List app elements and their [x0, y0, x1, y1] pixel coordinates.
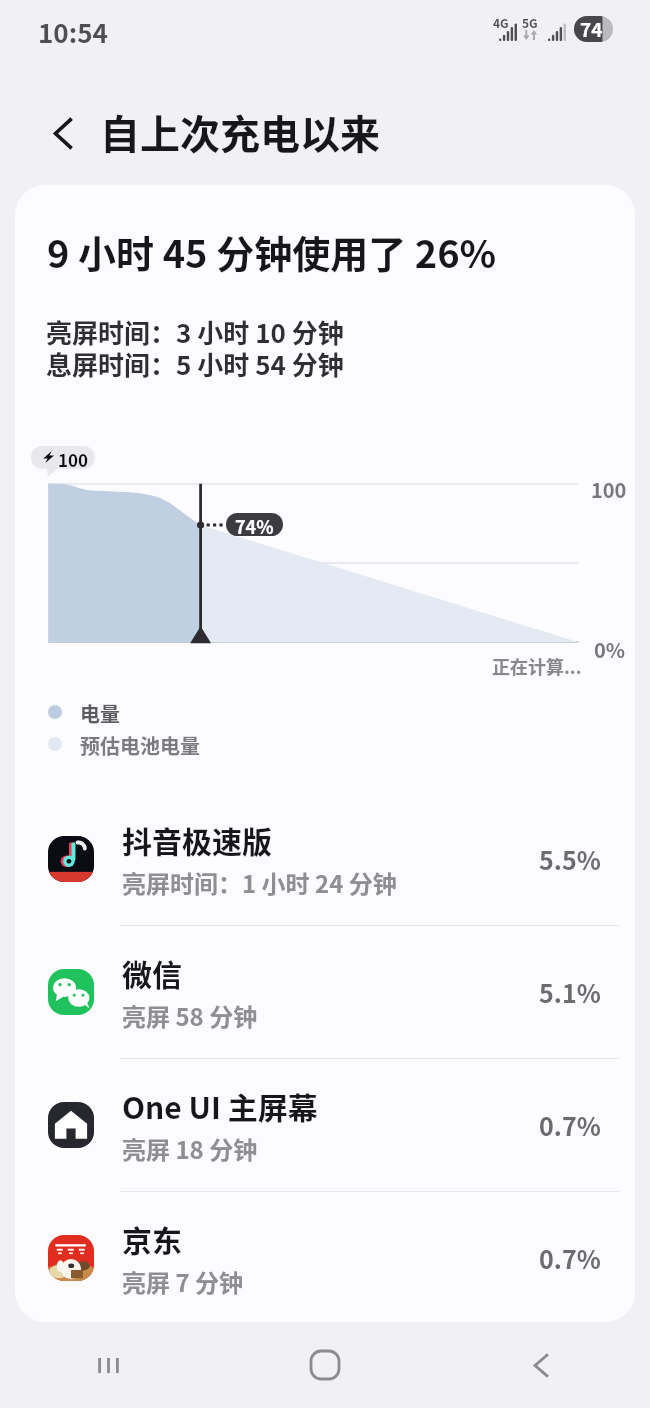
staticText: 100 — [58, 447, 89, 469]
staticText: 电量 — [80, 699, 120, 728]
staticText: 74% — [235, 513, 274, 536]
staticText: 微信 — [122, 951, 182, 994]
staticText: 抖音极速版 — [122, 818, 272, 861]
staticText: 9 小时 45 分钟使用了 26% — [47, 224, 497, 279]
staticText: 0% — [594, 635, 626, 664]
button[interactable]: Back — [433, 1322, 650, 1408]
button[interactable]: One UI 主屏幕 — [15, 1059, 635, 1191]
button[interactable]: Back — [35, 105, 91, 161]
staticText: 正在计算... — [492, 653, 582, 679]
button[interactable]: 京东 — [15, 1192, 635, 1322]
staticText: 自上次充电以来 — [100, 103, 380, 161]
staticText: 亮屏 7 分钟 — [122, 1264, 244, 1299]
staticText: 0.7% — [539, 1240, 601, 1276]
staticText: 0.7% — [539, 1107, 601, 1143]
button[interactable]: Recent apps — [0, 1322, 216, 1408]
staticText: 10:54 — [38, 13, 108, 51]
button[interactable]: Home — [216, 1322, 433, 1408]
staticText: 5.1% — [539, 974, 601, 1010]
staticText: 亮屏 58 分钟 — [122, 998, 258, 1033]
staticText: 100 — [591, 475, 627, 504]
button[interactable]: 抖音极速版 — [15, 793, 635, 925]
button[interactable]: 微信 — [15, 926, 635, 1058]
staticText: 亮屏 18 分钟 — [122, 1131, 258, 1166]
staticText: 亮屏时间：3 小时 10 分钟 — [46, 313, 344, 351]
staticText: 74 — [580, 16, 603, 41]
staticText: 5G — [522, 14, 538, 31]
staticText: 京东 — [122, 1217, 182, 1260]
staticText: 亮屏时间：1 小时 24 分钟 — [122, 865, 397, 900]
staticText: 息屏时间：5 小时 54 分钟 — [46, 345, 344, 383]
staticText: 4G — [493, 14, 509, 31]
staticText: 5.5% — [539, 841, 601, 877]
staticText: 预估电池电量 — [80, 731, 200, 760]
staticText: One UI 主屏幕 — [122, 1084, 318, 1127]
